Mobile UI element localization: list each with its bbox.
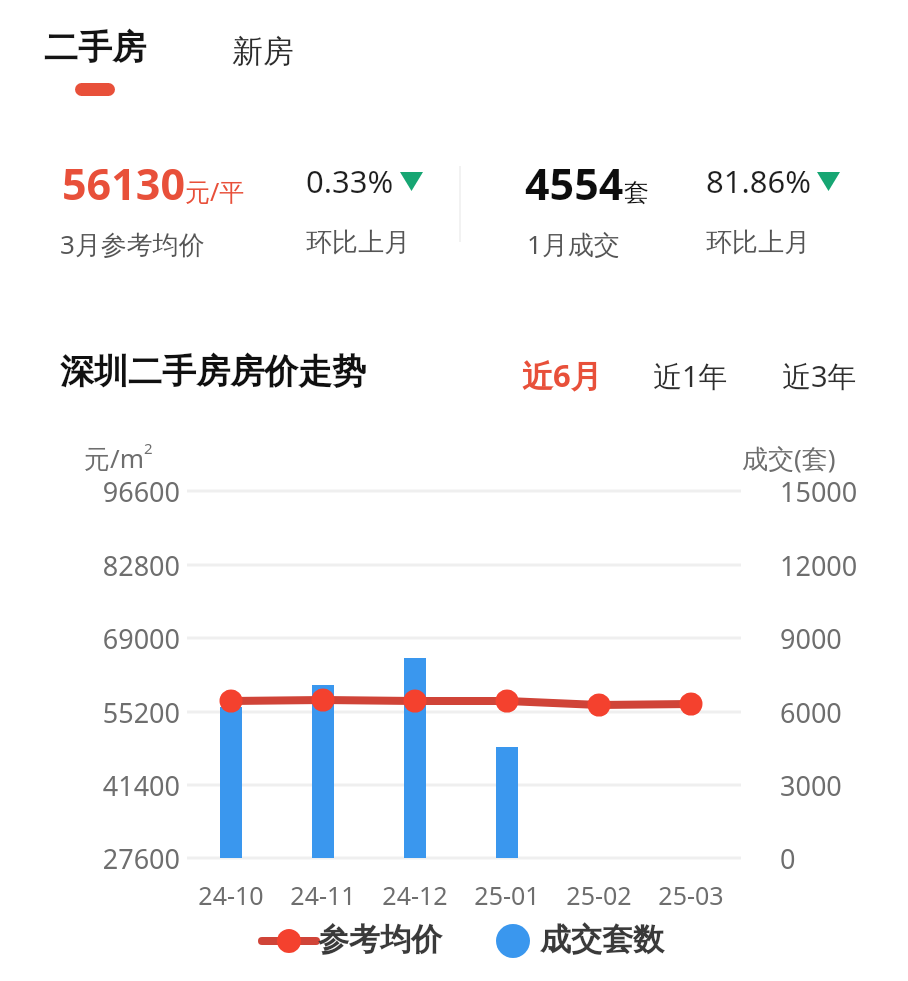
staticText: 3000: [780, 767, 842, 804]
button[interactable]: 新房: [226, 32, 300, 71]
staticText: 27600: [60, 840, 180, 877]
button[interactable]: 近3年: [780, 354, 859, 398]
button[interactable]: 近6月: [520, 352, 604, 398]
staticText: 24-11: [263, 878, 383, 912]
staticText: 12000: [780, 547, 858, 584]
staticText: 81.86%: [706, 160, 811, 202]
staticText: 2: [144, 438, 153, 458]
staticText: 24-10: [171, 878, 291, 912]
staticText: 82800: [60, 547, 180, 584]
staticText: 25-03: [631, 878, 751, 912]
staticText: 0: [780, 840, 796, 877]
staticText: 3月参考均价: [60, 226, 205, 262]
staticText: 元/平: [185, 174, 245, 208]
staticText: 9000: [780, 620, 842, 657]
staticText: 1月成交: [527, 226, 620, 262]
staticText: 近1年: [653, 356, 728, 396]
staticText: 41400: [60, 767, 180, 804]
staticText: 近3年: [782, 356, 857, 396]
staticText: 56130: [62, 154, 185, 213]
staticText: 成交(套): [742, 440, 836, 476]
staticText: 96600: [60, 473, 180, 510]
staticText: 25-01: [447, 878, 567, 912]
staticText: 套: [624, 177, 649, 208]
staticText: 新房: [232, 32, 294, 71]
staticText: 元/m: [84, 440, 144, 476]
button[interactable]: 近1年: [651, 354, 730, 398]
staticText: 环比上月: [706, 226, 810, 259]
staticText: 深圳二手房房价走势: [60, 350, 366, 393]
button[interactable]: 参考均价: [318, 920, 442, 959]
button[interactable]: 二手房: [38, 26, 152, 96]
staticText: 参考均价: [318, 920, 442, 959]
staticText: 0.33%: [306, 160, 394, 202]
staticText: 15000: [780, 473, 858, 510]
staticText: 55200: [60, 694, 180, 731]
other: Decrease: [400, 172, 423, 191]
other: Decrease: [817, 172, 840, 191]
staticText: 成交套数: [540, 920, 664, 959]
staticText: 25-02: [539, 878, 659, 912]
staticText: 4554: [525, 154, 624, 213]
staticText: 6000: [780, 694, 842, 731]
staticText: 环比上月: [306, 226, 410, 259]
staticText: 69000: [60, 620, 180, 657]
staticText: 二手房: [44, 26, 146, 69]
staticText: 24-12: [355, 878, 475, 912]
staticText: 近6月: [522, 354, 602, 396]
button[interactable]: 成交套数: [540, 920, 664, 959]
